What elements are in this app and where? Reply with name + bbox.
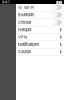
staticText: 9:41 xyxy=(2,0,10,4)
button[interactable]: Cellular xyxy=(16,19,64,26)
staticText: Wi-Fi xyxy=(24,5,34,10)
button[interactable]: Bluetooth xyxy=(16,11,64,19)
button[interactable]: Hotspot xyxy=(16,26,64,34)
staticText: ▮▮▮ xyxy=(56,0,62,4)
button[interactable]: Wi-Fi xyxy=(16,4,64,11)
staticText: VPN xyxy=(18,35,27,39)
staticText: Notifications xyxy=(18,42,39,47)
staticText: Bluetooth xyxy=(18,12,34,17)
staticText: Hotspot xyxy=(18,27,31,32)
staticText: Sounds xyxy=(18,49,31,54)
staticText: Cellular xyxy=(18,20,32,25)
button[interactable]: Sounds xyxy=(16,48,64,56)
button[interactable]: VPN xyxy=(16,34,64,41)
button[interactable]: Notifications xyxy=(16,41,64,48)
